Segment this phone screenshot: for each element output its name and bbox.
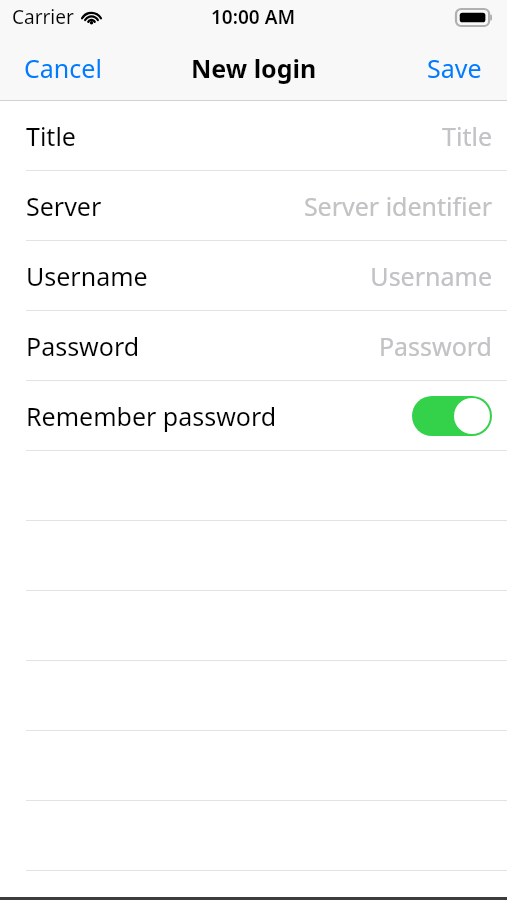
staticText: Cancel <box>24 51 102 85</box>
button[interactable]: Cancel <box>0 41 126 95</box>
staticText: Save <box>427 51 482 85</box>
button[interactable]: Server <box>0 171 507 240</box>
staticText: Server <box>26 189 102 223</box>
button[interactable]: Save <box>402 41 507 95</box>
button[interactable]: Remember password toggle, on <box>412 396 492 436</box>
staticText: New login <box>191 51 317 85</box>
button[interactable]: Title <box>0 101 507 170</box>
staticText: Username <box>26 259 148 293</box>
staticText: 10:00 AM <box>211 4 296 30</box>
staticText: Carrier <box>12 4 74 30</box>
staticText: Remember password <box>26 399 277 433</box>
button[interactable]: Username <box>0 241 507 310</box>
staticText: Password <box>148 329 492 363</box>
staticText: Title <box>84 119 492 153</box>
button[interactable]: Password <box>0 311 507 380</box>
staticText: Password <box>26 329 140 363</box>
staticText: Title <box>26 119 76 153</box>
button[interactable]: Remember password <box>0 381 507 450</box>
staticText: Server identifier <box>110 189 492 223</box>
staticText: Username <box>156 259 492 293</box>
